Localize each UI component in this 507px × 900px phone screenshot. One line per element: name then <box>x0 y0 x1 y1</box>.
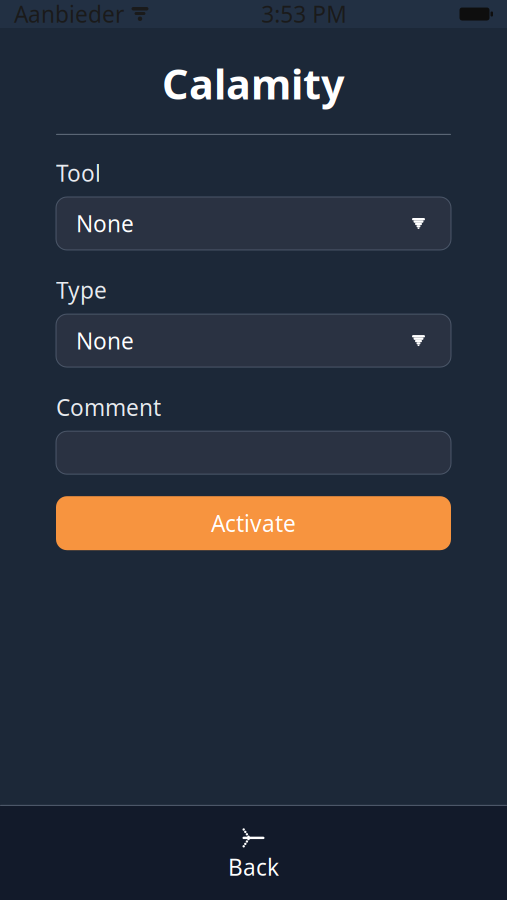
staticText: Aanbieder <box>14 0 124 29</box>
button[interactable]: Back <box>194 806 313 900</box>
button[interactable]: Comment <box>56 431 451 474</box>
staticText: Back <box>228 852 279 882</box>
button[interactable]: None <box>56 197 451 250</box>
staticText: Calamity <box>162 56 345 111</box>
staticText: 3:53 PM <box>261 0 347 29</box>
staticText: None <box>76 325 134 356</box>
staticText: Type <box>56 275 107 305</box>
staticText: Tool <box>56 158 101 188</box>
button[interactable]: Activate <box>56 496 451 550</box>
staticText: Activate <box>211 508 296 538</box>
staticText: None <box>76 208 134 238</box>
button[interactable]: None <box>56 314 451 367</box>
staticText: Comment <box>56 392 161 422</box>
